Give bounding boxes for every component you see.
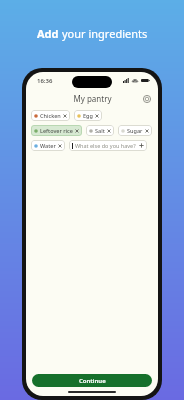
staticText: My pantry (73, 93, 112, 104)
button[interactable]: Chicken (31, 110, 70, 121)
staticText: your ingredients (62, 26, 148, 41)
button[interactable]: Leftover rice (31, 125, 82, 136)
staticText: Salt (95, 127, 105, 134)
button[interactable]: Help (141, 93, 152, 104)
staticText: Leftover rice (40, 127, 73, 134)
button[interactable]: Continue (32, 374, 152, 387)
staticText: Chicken (40, 112, 61, 119)
button[interactable]: Sugar (118, 125, 152, 136)
button[interactable]: Salt (86, 125, 114, 136)
staticText: Sugar (127, 127, 143, 134)
staticText: Egg (83, 112, 93, 119)
staticText: What else do you have? (75, 142, 136, 149)
staticText: Water (40, 142, 56, 149)
staticText: 16:36 (37, 77, 53, 85)
button[interactable]: Water (31, 140, 65, 151)
button[interactable]: What else do you have? (69, 140, 147, 151)
staticText: Add (37, 26, 62, 41)
staticText: Continue (79, 377, 106, 385)
button[interactable]: Egg (74, 110, 102, 121)
